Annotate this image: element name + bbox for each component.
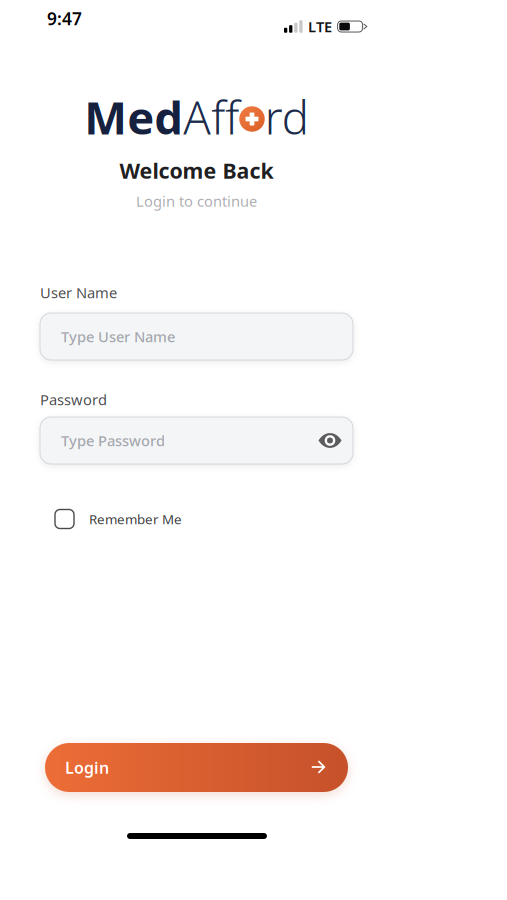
staticText: Login [65, 757, 109, 778]
staticText: Login to continue [136, 191, 257, 211]
button[interactable]: User Name [40, 313, 353, 360]
staticText: User Name [40, 283, 117, 302]
staticText: Remember Me [89, 510, 182, 528]
staticText: rd [265, 87, 309, 147]
staticText: Aff [183, 87, 239, 147]
staticText: 9:47 [47, 7, 82, 30]
staticText: LTE [308, 17, 332, 36]
staticText: Welcome Back [119, 156, 273, 185]
staticText: Type User Name [61, 327, 175, 346]
button[interactable]: Show password [318, 432, 342, 449]
button[interactable]: Password [40, 417, 353, 464]
button[interactable]: Remember Me [40, 508, 353, 530]
button[interactable]: Login [45, 743, 348, 792]
staticText: Med [84, 87, 183, 147]
staticText: Type Password [61, 431, 165, 450]
staticText: Password [40, 390, 107, 409]
